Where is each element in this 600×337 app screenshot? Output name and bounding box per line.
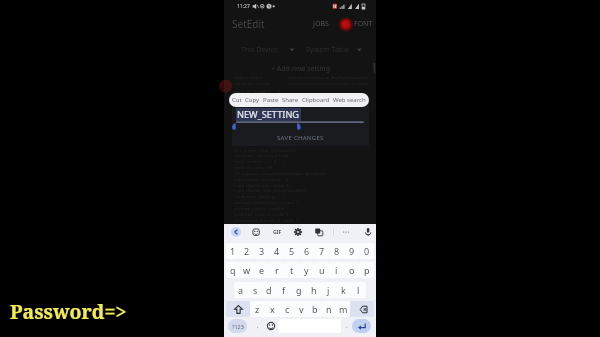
button[interactable]: 4 — [269, 243, 284, 259]
button[interactable]: w — [240, 262, 254, 278]
button[interactable]: m — [336, 301, 350, 317]
button[interactable]: hdmi_cec_enabled — [224, 89, 376, 95]
button[interactable]: Backspace — [350, 301, 374, 317]
button[interactable]: x — [265, 301, 280, 317]
button[interactable]: k — [336, 282, 351, 298]
button[interactable]: Shift — [226, 301, 250, 317]
button[interactable]: More options — [341, 227, 351, 237]
button[interactable]: s — [248, 282, 262, 298]
button[interactable]: u — [314, 262, 329, 278]
staticText: 1 — [282, 118, 285, 124]
button[interactable]: install_non_market_apps — [224, 112, 376, 118]
button[interactable]: d — [262, 282, 276, 298]
staticText: com.android.internal.display.cutout.emu — [288, 75, 368, 81]
button[interactable]: hush_gesture_used — [224, 101, 376, 107]
button[interactable]: q — [226, 262, 240, 278]
button[interactable]: instant_apps_enabled — [224, 118, 376, 124]
button[interactable]: 8 — [329, 243, 344, 259]
button[interactable]: n — [322, 301, 336, 317]
button[interactable]: ?123 — [228, 319, 247, 333]
button[interactable]: z — [250, 301, 265, 317]
button[interactable]: r — [269, 262, 284, 278]
button[interactable]: Settings — [293, 227, 303, 237]
button[interactable]: t — [284, 262, 299, 278]
button[interactable]: GIF — [272, 227, 282, 237]
button[interactable]: SetEdit — [224, 17, 265, 31]
button[interactable]: SAVE CHANGES — [232, 131, 369, 146]
button[interactable]: display_cutout — [224, 75, 376, 88]
button[interactable]: 5 — [284, 243, 299, 259]
staticText: t — [290, 264, 294, 276]
button[interactable]: 2 — [240, 243, 254, 259]
button[interactable]: Comma — [252, 319, 263, 333]
button[interactable]: Period — [341, 319, 352, 333]
button[interactable]: Voice input — [363, 227, 373, 237]
button[interactable]: Paste — [262, 96, 280, 104]
button[interactable]: Back — [231, 227, 241, 237]
button[interactable]: 3 — [254, 243, 269, 259]
staticText: u — [319, 264, 325, 276]
button[interactable]: p — [359, 262, 374, 278]
button[interactable]: f — [276, 282, 291, 298]
button[interactable]: Cut — [231, 96, 243, 104]
button[interactable]: Enter — [352, 319, 371, 333]
button[interactable]: location_mode — [224, 136, 376, 142]
button[interactable]: location_changer — [224, 130, 376, 136]
button[interactable]: o — [344, 262, 359, 278]
button[interactable]: System Table — [302, 43, 368, 57]
button[interactable]: 0 — [359, 243, 374, 259]
button[interactable]: Translate — [314, 227, 324, 237]
staticText: 0 — [364, 245, 370, 257]
button[interactable]: y — [299, 262, 314, 278]
button[interactable]: lock_screen_allow_private_notifications — [224, 142, 376, 148]
button[interactable]: l — [351, 282, 366, 298]
button[interactable]: 6 — [299, 243, 314, 259]
button[interactable]: immersive_mode_confirmations — [224, 107, 376, 113]
staticText: m — [339, 303, 348, 315]
button[interactable]: heads_up_notifications_enabled — [224, 95, 376, 101]
button[interactable]: h — [306, 282, 321, 298]
button[interactable]: Stickers — [251, 227, 261, 237]
button[interactable]: Clipboard — [301, 96, 331, 104]
button[interactable]: g — [291, 282, 306, 298]
button[interactable]: last_setup_shown — [224, 124, 376, 130]
button[interactable]: 7 — [314, 243, 329, 259]
button[interactable]: Share — [281, 96, 300, 104]
staticText: 0 — [286, 153, 289, 159]
button[interactable]: v — [294, 301, 308, 317]
button[interactable]: JOBS — [310, 17, 332, 31]
button[interactable]: 9 — [344, 243, 359, 259]
button[interactable]: Emoji — [265, 319, 276, 333]
button[interactable]: FONT — [351, 17, 376, 31]
button[interactable]: i — [329, 262, 344, 278]
button[interactable]: e — [254, 262, 269, 278]
staticText: + Add new setting — [271, 64, 330, 74]
button[interactable]: a — [234, 282, 248, 298]
button[interactable]: NEW_SETTING — [236, 108, 301, 121]
button[interactable]: + Add new setting — [224, 62, 376, 75]
button[interactable]: Web search — [332, 96, 367, 104]
button[interactable]: Copy — [244, 96, 261, 104]
button[interactable]: c — [280, 301, 294, 317]
button[interactable]: b — [308, 301, 322, 317]
staticText: heads_up_notifications_enabled — [234, 95, 297, 101]
button[interactable]: This Device — [237, 43, 300, 57]
button[interactable]: j — [321, 282, 336, 298]
button[interactable]: 1 — [226, 243, 240, 259]
